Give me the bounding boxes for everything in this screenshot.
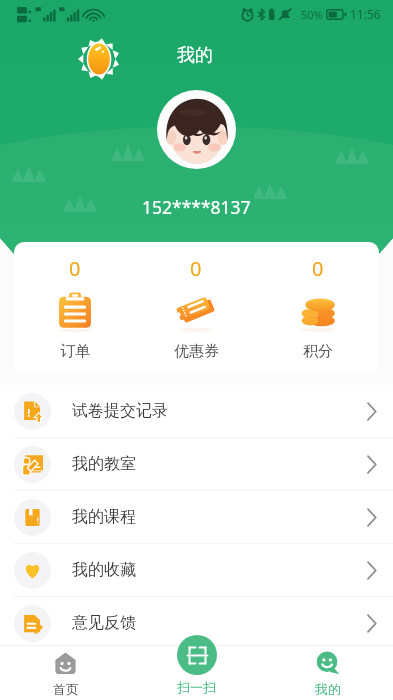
button[interactable]: 0: [257, 242, 379, 373]
staticText: 扫一扫: [177, 679, 216, 694]
staticText: 我的: [315, 681, 341, 697]
button[interactable]: Scan: [131, 645, 262, 700]
button[interactable]: 我的收藏: [0, 544, 393, 596]
button[interactable]: 首页: [0, 645, 131, 700]
staticText: 我的课程: [72, 507, 136, 527]
staticText: 积分: [303, 342, 333, 361]
staticText: 试卷提交记录: [72, 401, 168, 421]
button[interactable]: 0: [135, 242, 257, 373]
other: Scan: [177, 635, 217, 675]
staticText: 0: [190, 255, 202, 282]
staticText: 优惠券: [174, 342, 219, 361]
button[interactable]: Avatar: [157, 90, 236, 169]
staticText: 首页: [53, 681, 79, 697]
staticText: 我的教室: [72, 454, 136, 474]
staticText: 0: [69, 255, 81, 282]
button[interactable]: Weather: [80, 37, 118, 81]
button[interactable]: 0: [14, 242, 135, 373]
staticText: 意见反馈: [72, 613, 136, 633]
button[interactable]: 我的课程: [0, 491, 393, 543]
staticText: 我的: [177, 44, 213, 67]
staticText: 152****8137: [142, 195, 251, 219]
staticText: 50%: [301, 7, 323, 22]
button[interactable]: 我的教室: [0, 438, 393, 490]
staticText: 11:56: [350, 6, 381, 22]
staticText: 0: [312, 255, 324, 282]
button[interactable]: 我的: [262, 645, 393, 700]
staticText: 订单: [60, 342, 90, 361]
staticText: 我的收藏: [72, 560, 136, 580]
button[interactable]: 意见反馈: [0, 597, 393, 649]
button[interactable]: 试卷提交记录: [0, 385, 393, 437]
